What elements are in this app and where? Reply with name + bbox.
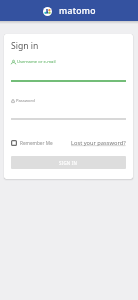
other: Matomo logo xyxy=(43,7,52,16)
staticText: Sign in xyxy=(11,40,39,52)
staticText: Lost your password? xyxy=(71,139,126,147)
button[interactable]: Lost your password? xyxy=(71,139,126,147)
button[interactable]: Remember Me xyxy=(11,140,53,146)
staticText: SIGN IN xyxy=(59,160,78,166)
staticText: Password xyxy=(16,98,35,104)
button[interactable]: SIGN IN xyxy=(11,156,126,169)
staticText: Username or e-mail xyxy=(17,59,56,65)
staticText: matomo xyxy=(59,5,96,17)
staticText: Remember Me xyxy=(20,140,53,146)
